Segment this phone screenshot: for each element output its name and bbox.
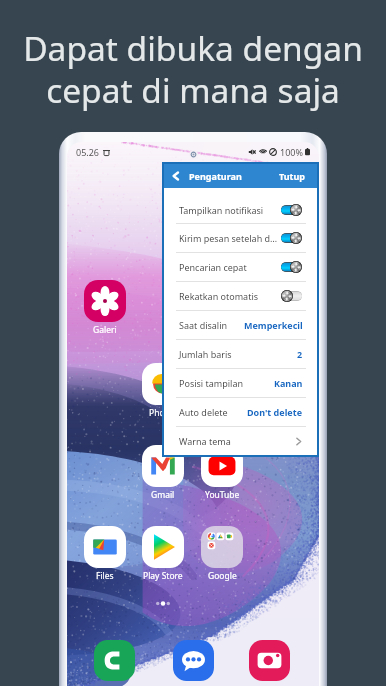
staticText: Galeri [93,324,117,336]
staticText: 100% [280,146,303,158]
other: Toggle [281,232,302,244]
staticText: YouTube [205,489,240,501]
staticText: Play Store [143,570,183,582]
button[interactable]: Google [193,526,251,582]
staticText: Kanan [274,377,303,389]
other: Open theme colour [294,437,303,446]
button[interactable]: Files [76,526,134,582]
staticText: Google [208,570,237,582]
other: Toggle [281,290,302,302]
staticText: Instagram [201,324,243,336]
staticText: Don't delete [247,406,303,418]
button[interactable]: Warna tema [164,427,317,455]
button[interactable]: Back [164,164,317,188]
staticText: Files [96,570,114,582]
button[interactable]: Instagram [193,280,251,336]
staticText: Tampilkan notifikasi [179,204,278,216]
staticText: Kirim pesan setelah dikirim [179,232,278,244]
button[interactable]: Jumlah baris [164,340,317,368]
staticText: Jumlah baris [179,348,232,360]
staticText: Tutup [279,170,306,182]
button[interactable]: CAMERA [249,640,290,681]
staticText: 05.26 [76,146,100,158]
button[interactable]: Pencarian cepat [164,253,317,281]
staticText: Rekatkan otomatis [179,290,278,302]
button[interactable]: Saat disalin [164,311,317,339]
staticText: Auto delete [179,406,228,418]
other: Back [171,171,181,181]
staticText: Pencarian cepat [179,261,278,273]
staticText: Memperkecil [244,319,303,331]
staticText: Photos [149,407,177,419]
button[interactable]: YouTube [193,445,251,501]
staticText: Posisi tampilan [179,377,243,389]
button[interactable]: Gmail [134,445,192,501]
staticText: Gmail [151,489,175,501]
staticText: Saat disalin [179,319,228,331]
other: Toggle [281,204,302,216]
button[interactable]: Kirim pesan setelah dikirim [164,224,317,252]
button[interactable]: MESSAGES [173,640,214,681]
button[interactable]: PHONE [94,640,135,681]
button[interactable]: Tampilkan notifikasi [164,196,317,223]
staticText: Pengaturan [189,170,242,182]
button[interactable]: Play Store [134,526,192,582]
other: Toggle [281,261,302,273]
staticText: Warna tema [179,435,231,447]
button[interactable]: Photos [134,363,192,419]
button[interactable]: Posisi tampilan [164,369,317,397]
staticText: Dapat dibuka dengan cepat di mana saja [23,25,363,113]
button[interactable]: Galeri [76,280,134,336]
button[interactable]: Rekatkan otomatis [164,282,317,310]
staticText: 2 [297,348,303,360]
button[interactable]: Auto delete [164,398,317,426]
